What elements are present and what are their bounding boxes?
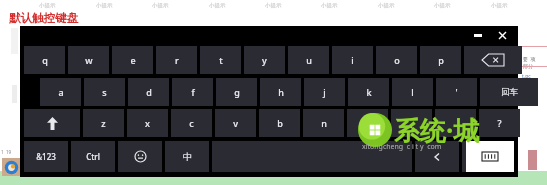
button[interactable]: h (260, 78, 301, 106)
button[interactable]: t (200, 46, 241, 74)
staticText: ' (455, 86, 458, 98)
staticText: &123 (36, 151, 56, 162)
button[interactable]: Minimize (470, 29, 486, 42)
staticText: d (146, 86, 152, 98)
button[interactable]: e (112, 46, 153, 74)
button[interactable]: Right (462, 141, 506, 172)
button[interactable]: u (288, 46, 329, 74)
staticText: 小提示 (39, 2, 56, 9)
staticText: 回车 (501, 87, 518, 98)
staticText: n (321, 117, 327, 129)
button[interactable]: p (420, 46, 461, 74)
button[interactable]: q (24, 46, 65, 74)
button[interactable]: &123 (24, 141, 68, 172)
button[interactable]: j (304, 78, 345, 106)
button[interactable]: m (347, 109, 388, 137)
staticText: , (410, 117, 413, 129)
button[interactable]: l (392, 78, 433, 106)
staticText: m (363, 117, 372, 129)
staticText: 小提示 (265, 2, 282, 9)
staticText: j (323, 86, 326, 98)
staticText: Ctrl (86, 151, 100, 162)
staticText: xitongcheng c i t y com (362, 142, 442, 152)
staticText: . (454, 117, 457, 129)
staticText: 小提示 (321, 2, 338, 9)
button[interactable]: 中 (165, 141, 209, 172)
staticText: k (366, 86, 372, 98)
staticText: o (394, 54, 400, 66)
button[interactable]: g (216, 78, 257, 106)
staticText: 1 19 (1, 149, 12, 155)
button[interactable]: Space (212, 141, 412, 172)
button[interactable]: , (391, 109, 432, 137)
button[interactable]: c (171, 109, 212, 137)
staticText: 系统·城 (394, 112, 480, 148)
staticText: y (262, 54, 267, 66)
staticText: t.pc (522, 73, 531, 80)
staticText: ? (497, 117, 502, 129)
button[interactable]: Backspace (464, 46, 522, 74)
button[interactable]: 回车 (480, 78, 538, 106)
button[interactable]: w (68, 46, 109, 74)
staticText: 小提示 (152, 2, 169, 9)
staticText: 默认触控键盘 (9, 11, 78, 25)
staticText: x (145, 117, 150, 129)
staticText: u (306, 54, 312, 66)
staticText: g (234, 86, 240, 98)
button[interactable]: x (127, 109, 168, 137)
button[interactable]: ? (479, 109, 520, 137)
button[interactable]: ' (436, 78, 477, 106)
staticText: l (411, 86, 414, 98)
button[interactable]: y (244, 46, 285, 74)
button[interactable]: r (156, 46, 197, 74)
button[interactable]: Shift (24, 109, 80, 137)
staticText: 中 (183, 151, 192, 162)
staticText: w (85, 54, 93, 66)
button[interactable]: Left (415, 141, 459, 172)
button[interactable]: a (40, 78, 81, 106)
button[interactable]: k (348, 78, 389, 106)
button[interactable]: f (172, 78, 213, 106)
button[interactable]: o (376, 46, 417, 74)
staticText: r (175, 54, 179, 66)
button[interactable] (2, 158, 20, 176)
staticText: v (233, 117, 238, 129)
button[interactable]: b (259, 109, 300, 137)
button[interactable]: v (215, 109, 256, 137)
staticText: 小提示 (434, 2, 451, 9)
staticText: c (189, 117, 194, 129)
staticText: 小提示 (209, 2, 226, 9)
staticText: t (219, 54, 223, 66)
staticText: 小提示 (491, 2, 508, 9)
button[interactable]: Emoji (118, 141, 162, 172)
staticText: z (101, 117, 106, 129)
button[interactable]: i (332, 46, 373, 74)
button[interactable]: Close (494, 29, 510, 42)
staticText: q (42, 54, 48, 66)
button[interactable]: z (83, 109, 124, 137)
button[interactable]: Ctrl (71, 141, 115, 172)
staticText: p (438, 54, 444, 66)
button[interactable]: s (84, 78, 125, 106)
staticText: i (351, 54, 354, 66)
button[interactable]: Hide keyboard (466, 141, 514, 172)
button[interactable]: . (435, 109, 476, 137)
button[interactable]: d (128, 78, 169, 106)
staticText: b (277, 117, 283, 129)
staticText: f (191, 86, 195, 98)
staticText: h (278, 86, 284, 98)
staticText: 小提示 (96, 2, 113, 9)
staticText: s (102, 86, 107, 98)
button[interactable]: n (303, 109, 344, 137)
staticText: 小提示 (378, 2, 395, 9)
staticText: 要 项 部分 (523, 56, 536, 70)
staticText: a (58, 86, 64, 98)
staticText: e (130, 54, 136, 66)
